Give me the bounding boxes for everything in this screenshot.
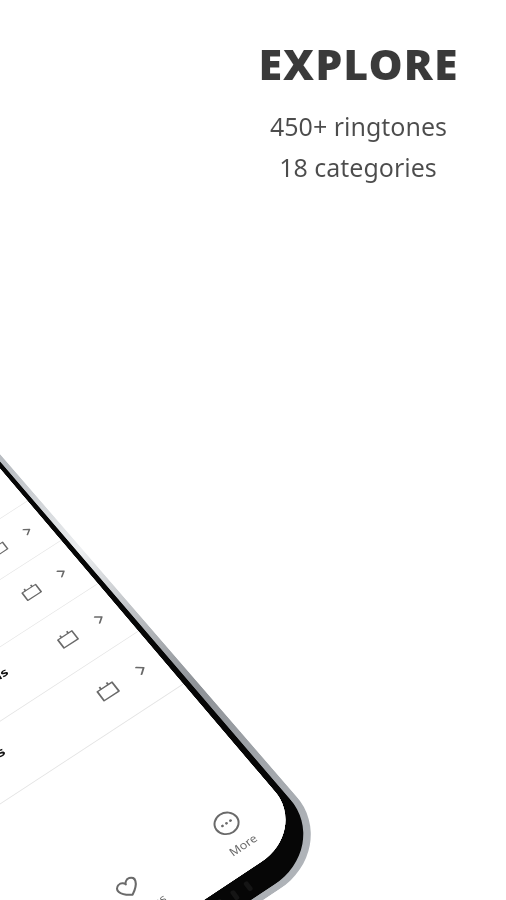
button[interactable]: Hip Hop & Dance Sounds (0, 584, 138, 853)
staticText: 450+ ringtones (270, 109, 447, 143)
staticText: 18 categories (279, 150, 437, 184)
staticText: Favorites (116, 890, 169, 900)
staticText: EXPLORE (258, 34, 459, 93)
button[interactable]: Halloween Sounds (0, 631, 183, 900)
button[interactable]: More (160, 769, 308, 898)
button[interactable]: Favorites (63, 832, 207, 900)
button[interactable]: Nature Ringtones (0, 540, 98, 794)
button[interactable]: Alarm Ringtones (0, 501, 61, 740)
staticText: Halloween Sounds (0, 742, 9, 835)
staticText: More (225, 830, 261, 859)
button[interactable]: Message Tones (0, 465, 27, 691)
staticText: Hip Hop & Dance Sounds (0, 664, 12, 776)
